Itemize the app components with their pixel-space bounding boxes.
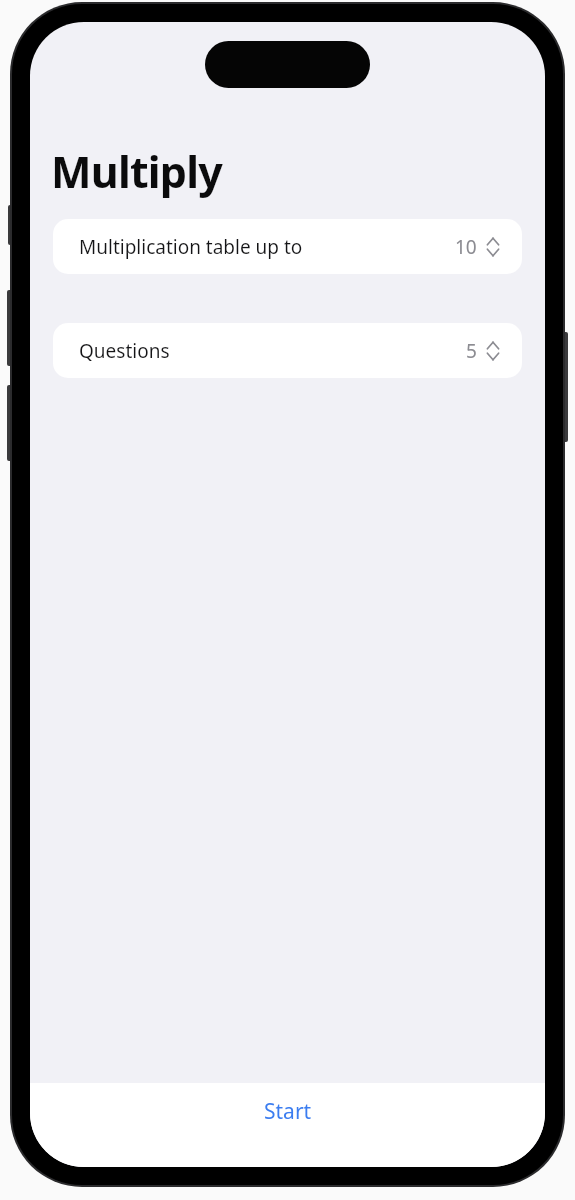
- button[interactable]: Multiplication table up to: [53, 219, 522, 274]
- staticText: Questions: [79, 338, 170, 364]
- button[interactable]: Change Questions: [485, 339, 501, 363]
- staticText: Multiply: [51, 142, 222, 201]
- staticText: 5: [466, 338, 477, 364]
- button[interactable]: Questions: [53, 323, 522, 378]
- staticText: 10: [455, 234, 477, 260]
- button[interactable]: Start: [30, 1083, 545, 1167]
- staticText: Multiplication table up to: [79, 234, 303, 260]
- staticText: Start: [264, 1097, 312, 1126]
- button[interactable]: Change Multiplication table up to: [485, 235, 501, 259]
